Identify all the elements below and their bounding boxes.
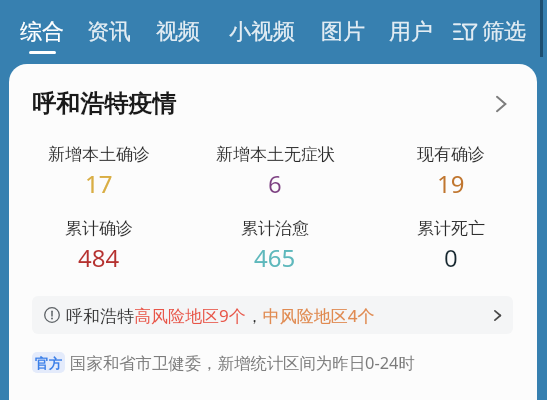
staticText: 呼和浩特疫情 [32, 89, 176, 119]
staticText: 综合 [20, 18, 64, 46]
staticText: 累计治愈 [241, 218, 309, 239]
staticText: 6 [268, 167, 282, 200]
staticText: 新增本土无症状 [216, 144, 335, 165]
staticText: 官方 [35, 355, 62, 372]
staticText: 17 [85, 167, 113, 200]
staticText: 小视频 [229, 18, 295, 46]
staticText: 图片 [321, 18, 365, 46]
staticText: 19 [437, 167, 465, 200]
staticText: 筛选 [482, 18, 526, 46]
button[interactable]: 呼和浩特高风险地区9个，中风险地区4个 [32, 296, 513, 334]
staticText: 现有确诊 [417, 144, 485, 165]
button[interactable]: 综合 [20, 18, 64, 46]
button[interactable]: 小视频 [229, 18, 295, 46]
staticText: 484 [78, 241, 120, 274]
staticText: 呼和浩特高风险地区9个，中风险地区4个 [66, 304, 375, 327]
staticText: 国家和省市卫健委，新增统计区间为昨日0-24时 [70, 351, 415, 373]
button[interactable]: 图片 [321, 18, 365, 46]
staticText: 0 [444, 241, 458, 274]
other: 筛选 Filter [453, 18, 480, 44]
button[interactable]: 用户 [389, 18, 433, 46]
button[interactable]: 视频 [156, 18, 200, 46]
staticText: 465 [254, 241, 296, 274]
staticText: 资讯 [87, 18, 131, 46]
staticText: 视频 [156, 18, 200, 46]
staticText: 用户 [389, 18, 433, 46]
staticText: 累计确诊 [65, 218, 133, 239]
staticText: 累计死亡 [417, 218, 485, 239]
button[interactable]: 筛选 Filter [453, 18, 497, 46]
button[interactable]: 呼和浩特疫情 [9, 86, 537, 122]
button[interactable]: 资讯 [87, 18, 131, 46]
staticText: 新增本土确诊 [48, 144, 150, 165]
